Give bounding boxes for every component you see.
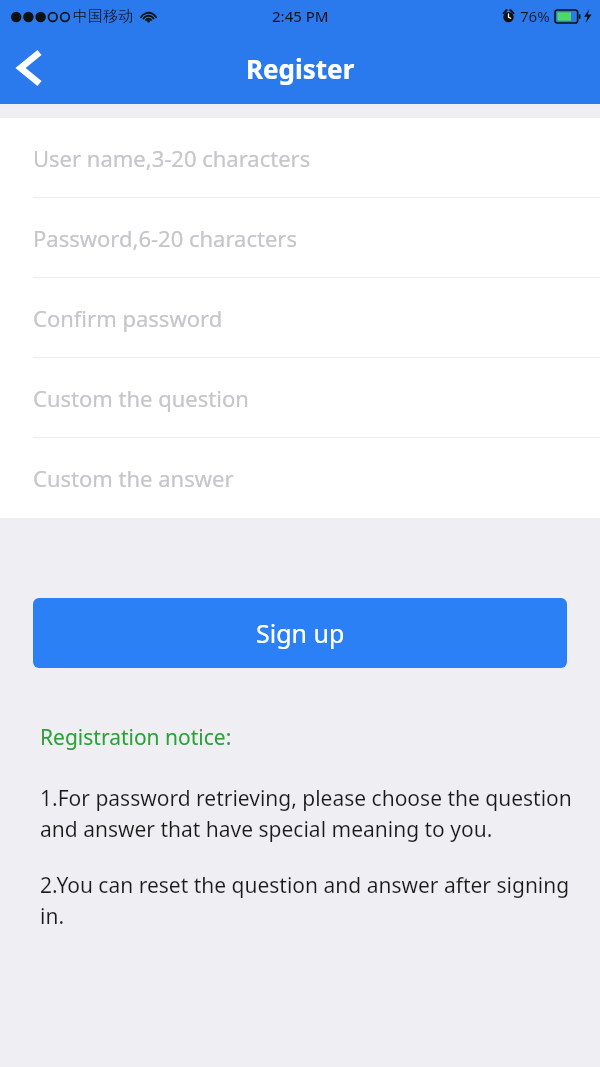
button[interactable]: User name,3-20 characters: [0, 118, 600, 198]
staticText: Custom the answer: [33, 463, 234, 493]
staticText: 1.For password retrieving, please choose…: [40, 784, 576, 843]
button[interactable]: Custom the question: [0, 358, 600, 438]
button[interactable]: Confirm password: [0, 278, 600, 358]
staticText: User name,3-20 characters: [33, 143, 311, 173]
staticText: Sign up: [256, 616, 345, 650]
staticText: 2:45 PM: [272, 6, 329, 26]
staticText: Registration notice:: [40, 723, 232, 752]
button[interactable]: Password,6-20 characters: [0, 198, 600, 278]
staticText: Password,6-20 characters: [33, 223, 297, 253]
staticText: Confirm password: [33, 303, 223, 333]
staticText: 2.You can reset the question and answer …: [40, 871, 576, 930]
staticText: Register: [246, 51, 355, 86]
staticText: Custom the question: [33, 383, 249, 413]
button[interactable]: Custom the answer: [0, 438, 600, 518]
button[interactable]: Sign up: [33, 598, 567, 668]
button[interactable]: Back: [0, 40, 56, 96]
staticText: 中国移动: [73, 7, 133, 26]
staticText: 76%: [520, 6, 550, 26]
